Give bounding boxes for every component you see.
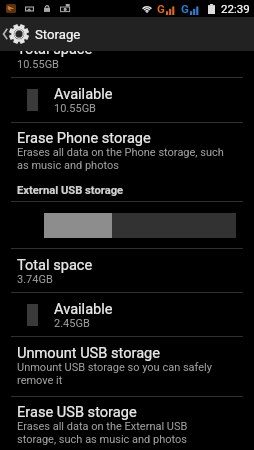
staticText: Available bbox=[54, 85, 113, 102]
staticText: 10.55GB bbox=[54, 102, 96, 115]
button[interactable]: Available bbox=[0, 293, 254, 336]
staticText: G bbox=[181, 2, 189, 15]
button[interactable]: Storage, navigate up bbox=[0, 17, 254, 51]
staticText: 22:39 bbox=[221, 2, 250, 15]
staticText: Unmount USB storage bbox=[17, 344, 161, 361]
staticText: Unmount USB storage so you can safely re… bbox=[17, 361, 212, 386]
staticText: Total space bbox=[17, 40, 93, 57]
button[interactable]: Erase Phone storage bbox=[0, 123, 254, 180]
staticText: 10.55GB bbox=[17, 58, 59, 71]
staticText: Erases all data on the Phone storage, su… bbox=[17, 146, 224, 171]
staticText: Storage bbox=[35, 27, 81, 42]
staticText: 2.45GB bbox=[54, 317, 90, 330]
button[interactable]: Erase USB storage bbox=[0, 397, 254, 450]
staticText: G bbox=[157, 2, 165, 15]
staticText: Erase USB storage bbox=[17, 403, 137, 420]
button[interactable]: Unmount USB storage bbox=[0, 337, 254, 396]
staticText: External USB storage bbox=[17, 184, 124, 197]
button[interactable]: Total space bbox=[0, 249, 254, 292]
button[interactable]: Available bbox=[0, 78, 254, 122]
staticText: Erase Phone storage bbox=[17, 129, 151, 146]
staticText: 3.74GB bbox=[17, 273, 53, 286]
staticText: Available bbox=[54, 300, 113, 317]
staticText: Total space bbox=[17, 256, 93, 273]
staticText: Erases all data on the External USB stor… bbox=[17, 420, 188, 445]
